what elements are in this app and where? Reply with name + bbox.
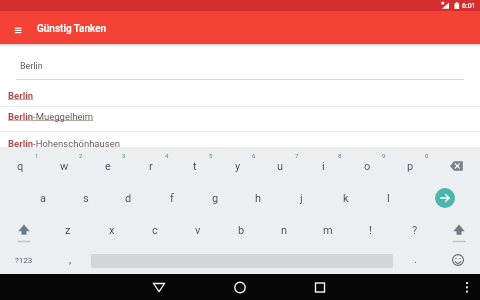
- button[interactable]: Berlin-Hohenschönhausen: [0, 132, 480, 147]
- button[interactable]: h: [237, 183, 280, 213]
- staticText: p: [407, 160, 414, 173]
- staticText: m: [323, 224, 333, 237]
- button[interactable]: t: [173, 151, 216, 181]
- staticText: n: [281, 224, 288, 237]
- staticText: Günstig Tanken: [37, 23, 107, 35]
- button[interactable]: i: [302, 151, 345, 181]
- button[interactable]: [141, 274, 177, 300]
- staticText: Berlin-Hohenschönhausen: [8, 138, 120, 149]
- staticText: 0: [425, 152, 429, 159]
- button[interactable]: [222, 274, 258, 300]
- staticText: Berlin: [8, 90, 34, 101]
- button[interactable]: [436, 151, 480, 181]
- button[interactable]: x: [90, 215, 133, 245]
- staticText: ,: [69, 253, 72, 266]
- staticText: ?: [412, 224, 418, 237]
- button[interactable]: .: [396, 245, 434, 273]
- button[interactable]: Berlin: [0, 82, 480, 106]
- button[interactable]: e: [86, 151, 129, 181]
- button[interactable]: w: [43, 151, 86, 181]
- staticText: Berlin-Mueggelheim: [8, 111, 94, 122]
- staticText: s: [83, 192, 89, 205]
- button[interactable]: [302, 274, 338, 300]
- staticText: .: [414, 253, 417, 266]
- staticText: 5: [209, 152, 213, 159]
- button[interactable]: o: [346, 151, 389, 181]
- button[interactable]: [444, 246, 472, 274]
- staticText: 1: [35, 152, 39, 159]
- button[interactable]: k: [324, 183, 367, 213]
- button[interactable]: y: [216, 151, 259, 181]
- staticText: w: [60, 160, 69, 173]
- button[interactable]: a: [21, 183, 64, 213]
- button[interactable]: !: [349, 215, 392, 245]
- button[interactable]: m: [306, 215, 349, 245]
- button[interactable]: r: [129, 151, 172, 181]
- staticText: Berlin: [20, 61, 43, 72]
- button[interactable]: j: [280, 183, 323, 213]
- staticText: q: [17, 160, 24, 173]
- staticText: r: [149, 160, 153, 173]
- staticText: l: [387, 192, 390, 205]
- staticText: d: [125, 192, 132, 205]
- staticText: ?123: [15, 256, 33, 265]
- button[interactable]: [437, 218, 480, 248]
- button[interactable]: ?123: [2, 245, 46, 275]
- staticText: 7: [295, 152, 299, 159]
- button[interactable]: ?: [393, 215, 436, 245]
- button[interactable]: Berlin-Mueggelheim: [0, 107, 480, 131]
- staticText: 4: [165, 152, 169, 159]
- button[interactable]: f: [150, 183, 193, 213]
- staticText: 2: [79, 152, 83, 159]
- button[interactable]: c: [133, 215, 176, 245]
- staticText: i: [322, 160, 325, 173]
- button[interactable]: [10, 22, 26, 38]
- staticText: e: [105, 160, 111, 173]
- staticText: h: [255, 192, 262, 205]
- button[interactable]: q: [0, 151, 42, 181]
- button[interactable]: ,: [50, 245, 90, 273]
- staticText: y: [235, 160, 241, 173]
- button[interactable]: [2, 218, 46, 248]
- staticText: 6: [252, 152, 256, 159]
- button[interactable]: p: [389, 151, 432, 181]
- staticText: 8: [338, 152, 342, 159]
- staticText: k: [343, 192, 349, 205]
- staticText: z: [65, 224, 71, 237]
- staticText: c: [152, 224, 158, 237]
- staticText: t: [193, 160, 197, 173]
- button[interactable]: n: [263, 215, 306, 245]
- button[interactable]: v: [176, 215, 219, 245]
- staticText: b: [238, 224, 245, 237]
- staticText: u: [277, 160, 284, 173]
- staticText: 9: [382, 152, 386, 159]
- button[interactable]: d: [107, 183, 150, 213]
- button[interactable]: u: [259, 151, 302, 181]
- staticText: j: [300, 192, 303, 205]
- button[interactable]: b: [220, 215, 263, 245]
- staticText: f: [170, 192, 174, 205]
- staticText: a: [40, 192, 46, 205]
- button[interactable]: z: [46, 215, 89, 245]
- staticText: x: [109, 224, 115, 237]
- staticText: !: [369, 224, 372, 237]
- staticText: 6:01: [462, 2, 476, 10]
- staticText: 3: [122, 152, 126, 159]
- button[interactable]: g: [194, 183, 237, 213]
- staticText: o: [364, 160, 371, 173]
- button[interactable]: s: [64, 183, 107, 213]
- staticText: v: [195, 224, 201, 237]
- button[interactable]: [435, 188, 455, 208]
- staticText: g: [212, 192, 219, 205]
- button[interactable]: l: [367, 183, 410, 213]
